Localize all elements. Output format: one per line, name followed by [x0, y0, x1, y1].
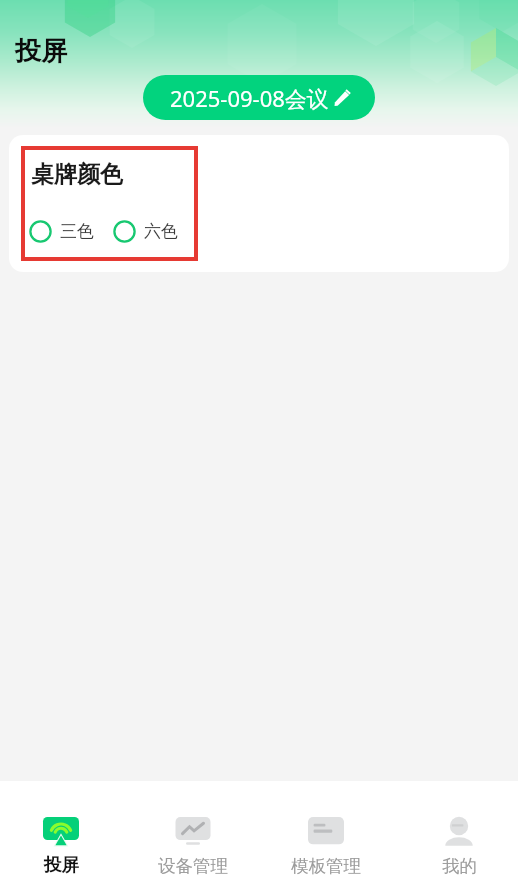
staticText: 六色	[144, 221, 178, 242]
staticText: 桌牌颜色	[31, 160, 123, 189]
other: 我的	[440, 817, 478, 847]
staticText: 模板管理	[291, 855, 361, 877]
staticText: 投屏	[44, 854, 79, 876]
button[interactable]: 我的	[388, 781, 518, 891]
other: 设备管理	[174, 817, 212, 847]
button[interactable]: 六色	[113, 220, 178, 243]
other: 模板管理	[307, 817, 345, 847]
button[interactable]: 三色	[29, 220, 94, 243]
button[interactable]: 设备管理	[128, 781, 258, 891]
staticText: 投屏	[15, 35, 67, 68]
button[interactable]: 投屏	[0, 781, 128, 891]
staticText: 三色	[60, 221, 94, 242]
staticText: 设备管理	[158, 855, 228, 877]
staticText: 2025-09-08会议	[170, 83, 329, 113]
button[interactable]: 模板管理	[258, 781, 388, 891]
button[interactable]: 2025-09-08会议	[143, 75, 375, 120]
other: 投屏	[43, 817, 79, 846]
staticText: 我的	[442, 855, 477, 877]
